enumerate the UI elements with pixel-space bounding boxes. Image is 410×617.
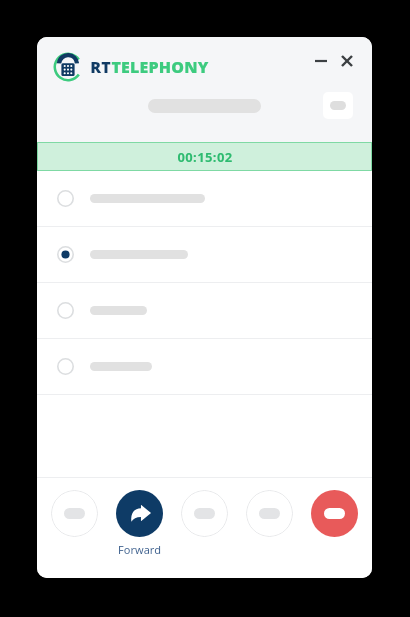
button[interactable]: Search field xyxy=(148,99,261,113)
button[interactable]: RT xyxy=(53,52,209,82)
button[interactable]: End call xyxy=(311,490,358,537)
button[interactable] xyxy=(37,171,372,226)
button[interactable]: Action 4 xyxy=(246,490,293,537)
button[interactable]: Menu xyxy=(323,92,353,119)
button[interactable]: Action 1 xyxy=(51,490,98,537)
button[interactable]: Action 3 xyxy=(181,490,228,537)
staticText: RT xyxy=(90,56,111,78)
staticText: TELEPHONY xyxy=(111,56,209,78)
button[interactable]: Forward xyxy=(116,490,163,537)
button[interactable]: Minimize xyxy=(311,51,331,71)
button[interactable] xyxy=(37,283,372,338)
button[interactable]: Close xyxy=(337,51,357,71)
staticText: 00:15:02 xyxy=(177,148,233,166)
button[interactable] xyxy=(37,339,372,394)
button[interactable] xyxy=(37,227,372,282)
staticText: Forward xyxy=(118,542,161,557)
